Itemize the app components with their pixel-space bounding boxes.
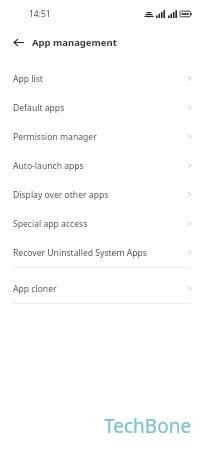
button[interactable]: Display over other apps bbox=[0, 180, 202, 209]
staticText: Default apps bbox=[13, 102, 186, 114]
staticText: TechBone bbox=[104, 413, 192, 439]
button[interactable]: Recover Uninstalled System Apps bbox=[0, 238, 202, 267]
button[interactable]: Auto-launch apps bbox=[0, 151, 202, 180]
button[interactable]: App list bbox=[0, 64, 202, 93]
staticText: Recover Uninstalled System Apps bbox=[13, 247, 186, 259]
staticText: Display over other apps bbox=[13, 189, 186, 201]
staticText: 14:51 bbox=[29, 8, 51, 20]
button[interactable]: Back bbox=[9, 33, 27, 51]
button[interactable]: Default apps bbox=[0, 93, 202, 122]
staticText: Auto-launch apps bbox=[13, 160, 186, 172]
staticText: App cloner bbox=[13, 283, 186, 295]
staticText: App management bbox=[32, 36, 117, 49]
staticText: Permission manager bbox=[13, 131, 186, 143]
button[interactable]: App cloner bbox=[0, 274, 202, 303]
staticText: App list bbox=[13, 73, 186, 85]
button[interactable]: Special app access bbox=[0, 209, 202, 238]
button[interactable]: Permission manager bbox=[0, 122, 202, 151]
staticText: Special app access bbox=[13, 218, 186, 230]
